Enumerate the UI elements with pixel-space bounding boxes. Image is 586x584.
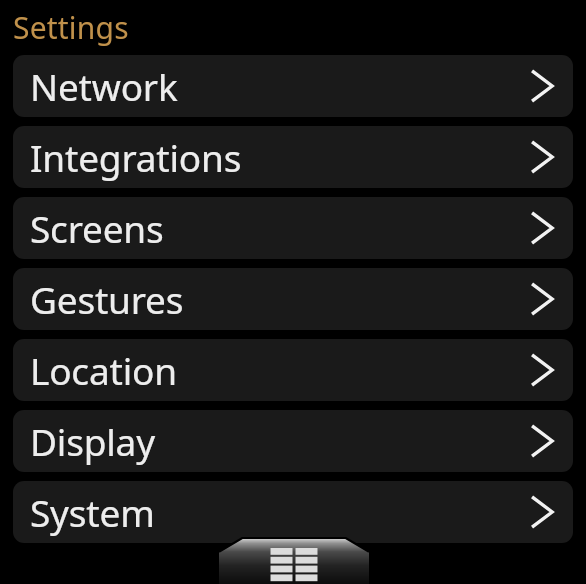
staticText: Display xyxy=(30,416,520,466)
staticText: Network xyxy=(30,61,520,111)
staticText: System xyxy=(30,487,520,537)
staticText: Location xyxy=(30,345,520,395)
staticText: Screens xyxy=(30,203,520,253)
staticText: Gestures xyxy=(30,274,520,324)
button[interactable]: Gestures xyxy=(13,268,573,330)
button[interactable]: Screens xyxy=(13,197,573,259)
button[interactable]: Open app grid xyxy=(219,538,369,584)
button[interactable]: Location xyxy=(13,339,573,401)
button[interactable]: Display xyxy=(13,410,573,472)
button[interactable]: Network xyxy=(13,55,573,117)
button[interactable]: System xyxy=(13,481,573,543)
staticText: Integrations xyxy=(30,132,520,182)
button[interactable]: Integrations xyxy=(13,126,573,188)
staticText: Settings xyxy=(13,7,129,48)
